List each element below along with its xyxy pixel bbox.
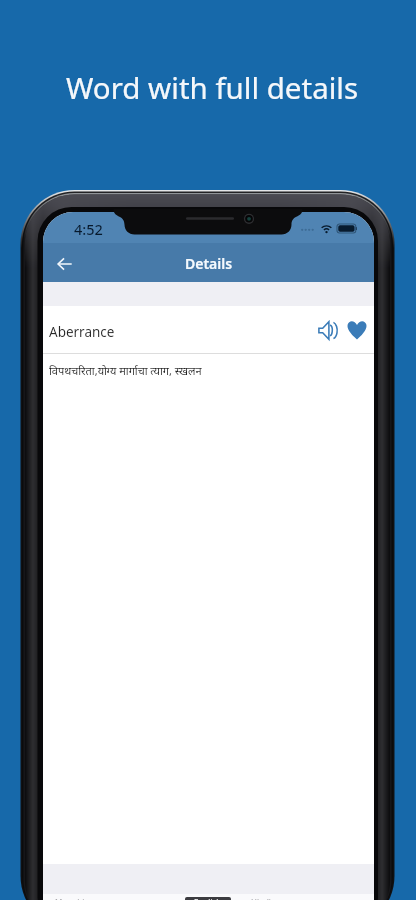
- staticText: 4:52: [74, 219, 103, 239]
- staticText: English: [194, 897, 222, 900]
- staticText: विपथचरिता,योग्य मार्गाचा त्याग, स्खलन: [49, 363, 202, 378]
- button[interactable]: Hindi: [241, 897, 281, 900]
- staticText: Hindi: [251, 897, 271, 900]
- staticText: Word with full details: [66, 67, 359, 107]
- staticText: Marathi: [55, 897, 85, 900]
- button[interactable]: Pronounce: [315, 317, 341, 343]
- staticText: Aberrance: [49, 323, 115, 341]
- button[interactable]: English: [185, 897, 231, 900]
- button[interactable]: Marathi: [51, 897, 89, 900]
- staticText: Details: [185, 254, 233, 273]
- button[interactable]: Back: [46, 246, 82, 282]
- button[interactable]: Aberrance: [43, 306, 374, 353]
- button[interactable]: Favorite: [344, 317, 370, 343]
